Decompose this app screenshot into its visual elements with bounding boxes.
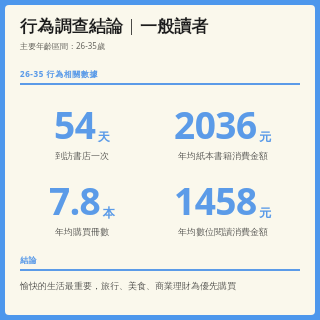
staticText: 本 — [103, 205, 115, 220]
button[interactable]: 54 — [54, 99, 110, 161]
staticText: 1458 — [174, 175, 257, 225]
staticText: 元 — [259, 129, 271, 144]
button[interactable]: 結論 — [20, 255, 300, 271]
button[interactable]: 7.8 — [49, 175, 115, 237]
button[interactable]: 26-35 行為相關數據 — [20, 68, 300, 85]
staticText: 26-35 行為相關數據 — [20, 68, 99, 79]
staticText: 到訪書店一次 — [55, 150, 109, 161]
staticText: 年均購買冊數 — [55, 226, 109, 237]
staticText: 54 — [54, 99, 96, 149]
button[interactable]: 2036 — [174, 99, 271, 161]
staticText: 2036 — [174, 99, 257, 149]
staticText: 元 — [259, 205, 271, 220]
staticText: 結論 — [20, 255, 38, 265]
staticText: 天 — [98, 129, 110, 144]
staticText: 行為調查結論 — [20, 16, 124, 37]
staticText: 主要年齡區間：26-35歲 — [20, 40, 105, 51]
button[interactable]: 1458 — [174, 175, 271, 237]
staticText: 年均數位閱讀消費金額 — [178, 226, 268, 237]
staticText: 年均紙本書籍消費金額 — [178, 150, 268, 161]
staticText: 愉快的生活最重要，旅行、美食、商業理財為優先購買 — [20, 280, 236, 291]
staticText: 一般讀者 — [140, 16, 209, 37]
staticText: 7.8 — [49, 175, 101, 225]
